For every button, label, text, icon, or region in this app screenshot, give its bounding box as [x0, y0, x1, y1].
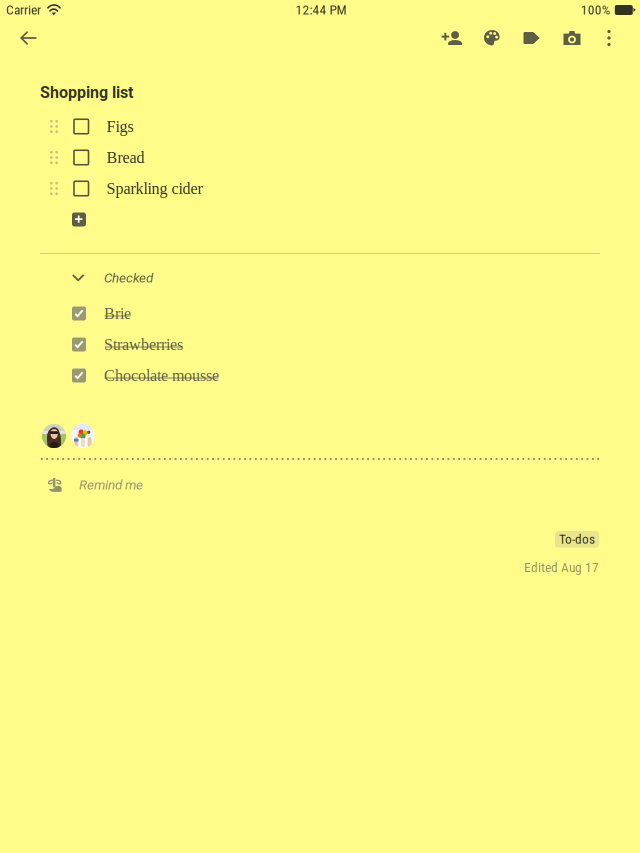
button[interactable]: Bread [0, 142, 640, 173]
button[interactable]: Collaborator [432, 20, 472, 56]
staticText: Bread [106, 149, 144, 166]
staticText: Carrier [6, 2, 41, 18]
button[interactable]: Back [0, 20, 58, 56]
staticText: Brie [104, 305, 131, 322]
staticText: Remind me [79, 477, 143, 493]
staticText: Shopping list [40, 83, 133, 102]
button[interactable]: To-dos [555, 531, 599, 548]
button[interactable]: More options [592, 20, 626, 56]
staticText: 100% [581, 2, 610, 18]
staticText: 12:44 PM [295, 2, 346, 18]
staticText: Chocolate mousse [104, 367, 219, 384]
button[interactable]: Figs [0, 111, 640, 142]
staticText: Edited Aug 17 [524, 560, 599, 575]
staticText: Strawberries [104, 336, 183, 353]
staticText: Checked [104, 270, 153, 286]
staticText: Figs [106, 118, 133, 135]
staticText: Sparkling cider [106, 180, 202, 197]
staticText: To-dos [559, 531, 595, 547]
button[interactable]: Chocolate mousse [0, 360, 640, 391]
button[interactable]: Brie [0, 298, 640, 329]
button[interactable]: Labels [512, 20, 552, 56]
button[interactable]: Remind me [0, 469, 640, 501]
button[interactable]: Sparkling cider [0, 173, 640, 204]
button[interactable]: Add image [552, 20, 592, 56]
button[interactable]: Strawberries [0, 329, 640, 360]
button[interactable]: Change color [472, 20, 512, 56]
button[interactable]: Add item [0, 204, 640, 235]
button[interactable]: Checked [0, 262, 640, 294]
